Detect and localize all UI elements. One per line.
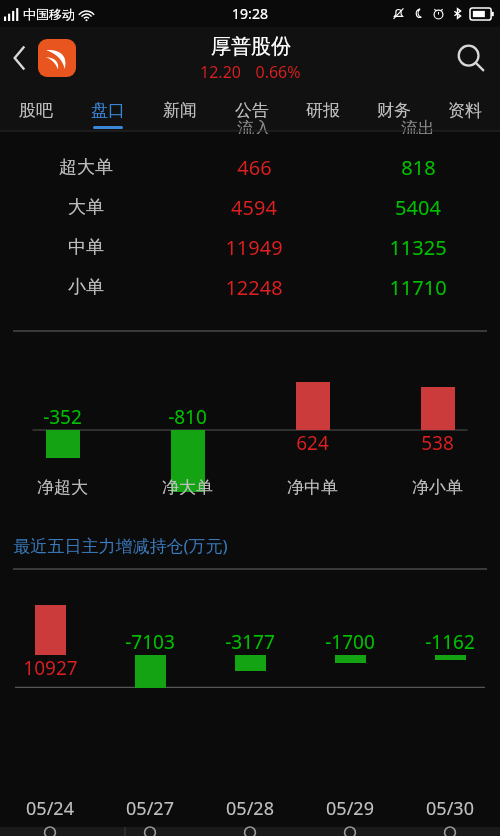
button[interactable]: Search xyxy=(442,27,500,89)
staticText: 小单 xyxy=(68,276,104,299)
button[interactable]: Profile xyxy=(400,827,500,836)
staticText: 12.20 xyxy=(200,61,241,83)
staticText: 流出 xyxy=(401,118,435,134)
staticText: 公告 xyxy=(235,100,269,121)
button[interactable]: 研报 xyxy=(287,89,358,131)
staticText: 05/24 xyxy=(26,796,74,821)
button[interactable]: Back xyxy=(0,27,38,89)
staticText: 财务 xyxy=(377,100,411,121)
staticText: 624 xyxy=(296,430,329,456)
button[interactable]: 大单 xyxy=(0,187,500,227)
staticText: 中单 xyxy=(68,236,104,259)
button[interactable]: 盘口 xyxy=(72,89,144,131)
staticText: 466 xyxy=(237,154,272,181)
staticText: 11710 xyxy=(389,274,447,301)
staticText: 818 xyxy=(401,154,436,181)
staticText: -1700 xyxy=(325,629,375,655)
staticText: 净中单 xyxy=(287,477,338,498)
staticText: 05/28 xyxy=(226,796,274,821)
button[interactable]: Community xyxy=(100,827,200,836)
staticText: 流入 xyxy=(237,118,271,134)
button[interactable]: 新闻 xyxy=(144,89,216,131)
staticText: 10927 xyxy=(23,655,78,681)
staticText: -352 xyxy=(43,404,82,430)
button[interactable]: Markets xyxy=(300,827,400,836)
staticText: 净大单 xyxy=(162,477,213,498)
staticText: 研报 xyxy=(306,100,340,121)
button[interactable]: 公告 xyxy=(216,89,287,131)
staticText: 05/29 xyxy=(326,796,374,821)
staticText: 净小单 xyxy=(412,477,463,498)
staticText: 大单 xyxy=(68,196,104,219)
button[interactable]: Trade xyxy=(200,827,300,836)
button[interactable]: 中单 xyxy=(0,227,500,267)
button[interactable]: 小单 xyxy=(0,267,500,307)
staticText: -1162 xyxy=(425,629,475,655)
button[interactable]: 超大单 xyxy=(0,147,500,187)
staticText: 5404 xyxy=(395,194,441,221)
staticText: 11949 xyxy=(225,234,283,261)
staticText: 新闻 xyxy=(163,100,197,121)
staticText: 19:28 xyxy=(232,4,268,23)
staticText: 12248 xyxy=(225,274,283,301)
staticText: 超大单 xyxy=(59,156,113,179)
staticText: -7103 xyxy=(125,629,175,655)
staticText: 厚普股份 xyxy=(211,34,291,59)
button[interactable]: 股吧 xyxy=(0,89,72,131)
staticText: 0.66% xyxy=(255,61,301,83)
staticText: 05/30 xyxy=(426,796,474,821)
staticText: 资料 xyxy=(448,100,482,121)
staticText: 4594 xyxy=(231,194,277,221)
button[interactable]: 财务 xyxy=(358,89,429,131)
staticText: 11325 xyxy=(389,234,447,261)
staticText: 净超大 xyxy=(37,477,88,498)
button[interactable]: Home xyxy=(0,827,100,836)
staticText: 中国移动 xyxy=(23,6,75,22)
staticText: 股吧 xyxy=(19,100,53,121)
staticText: 最近五日主力增减持仓(万元) xyxy=(13,534,228,557)
staticText: -3177 xyxy=(225,629,275,655)
staticText: 盘口 xyxy=(91,100,125,121)
staticText: -810 xyxy=(168,404,207,430)
button[interactable]: App home xyxy=(38,39,76,77)
button[interactable]: 资料 xyxy=(429,89,500,131)
staticText: 05/27 xyxy=(126,796,174,821)
staticText: 538 xyxy=(421,430,454,456)
